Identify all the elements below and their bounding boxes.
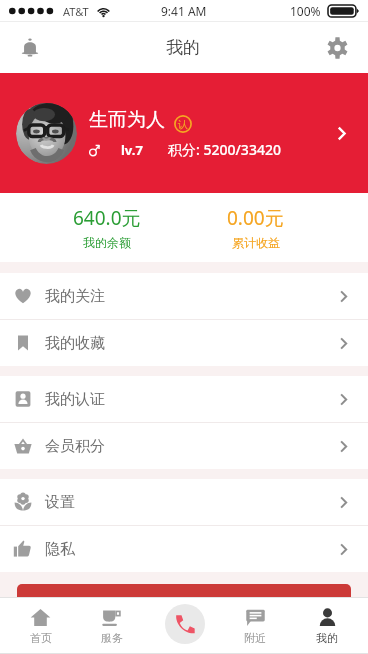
staticText: 我的余额 xyxy=(83,235,131,250)
button[interactable]: 隐私 xyxy=(0,526,368,572)
button[interactable]: 我的 xyxy=(291,597,363,654)
button[interactable]: 640.0元 xyxy=(33,193,181,262)
staticText: 附近 xyxy=(244,631,266,645)
button[interactable]: 会员积分 xyxy=(0,423,368,469)
staticText: 100% xyxy=(290,3,321,19)
staticText: 我的关注 xyxy=(45,287,105,306)
button[interactable]: 首页 xyxy=(5,597,76,654)
button[interactable]: 设置 xyxy=(0,479,368,525)
staticText: 会员积分 xyxy=(45,437,105,456)
staticText: 积分: 5200/33420 xyxy=(168,140,281,159)
button[interactable]: Call xyxy=(165,604,205,644)
button[interactable]: 附近 xyxy=(219,597,291,654)
staticText: 累计收益 xyxy=(232,235,280,250)
button[interactable]: Settings xyxy=(307,22,368,73)
staticText: 9:41 AM xyxy=(161,3,207,19)
staticText: 隐私 xyxy=(45,540,75,559)
button[interactable]: 我的收藏 xyxy=(0,320,368,366)
button[interactable]: 服务 xyxy=(76,597,147,654)
staticText: 生而为人 xyxy=(89,108,165,132)
staticText: 640.0元 xyxy=(73,205,141,231)
button[interactable]: 0.00元 xyxy=(181,193,330,262)
staticText: 设置 xyxy=(45,493,75,512)
staticText: 服务 xyxy=(101,631,123,645)
staticText: 我的认证 xyxy=(45,390,105,409)
button[interactable]: Notifications xyxy=(0,22,59,73)
staticText: 首页 xyxy=(30,631,52,645)
staticText: 0.00元 xyxy=(227,205,284,231)
button[interactable]: 我的关注 xyxy=(0,273,368,319)
staticText: AT&T xyxy=(63,4,89,19)
staticText: 我的 xyxy=(166,37,200,58)
staticText: lv.7 xyxy=(121,141,143,159)
staticText: 我的收藏 xyxy=(45,334,105,353)
staticText: 我的 xyxy=(316,631,338,645)
staticText: 认 xyxy=(178,118,188,131)
button[interactable]: 我的认证 xyxy=(0,376,368,422)
button[interactable]: 生而为人 xyxy=(0,73,368,193)
button[interactable] xyxy=(17,584,351,597)
